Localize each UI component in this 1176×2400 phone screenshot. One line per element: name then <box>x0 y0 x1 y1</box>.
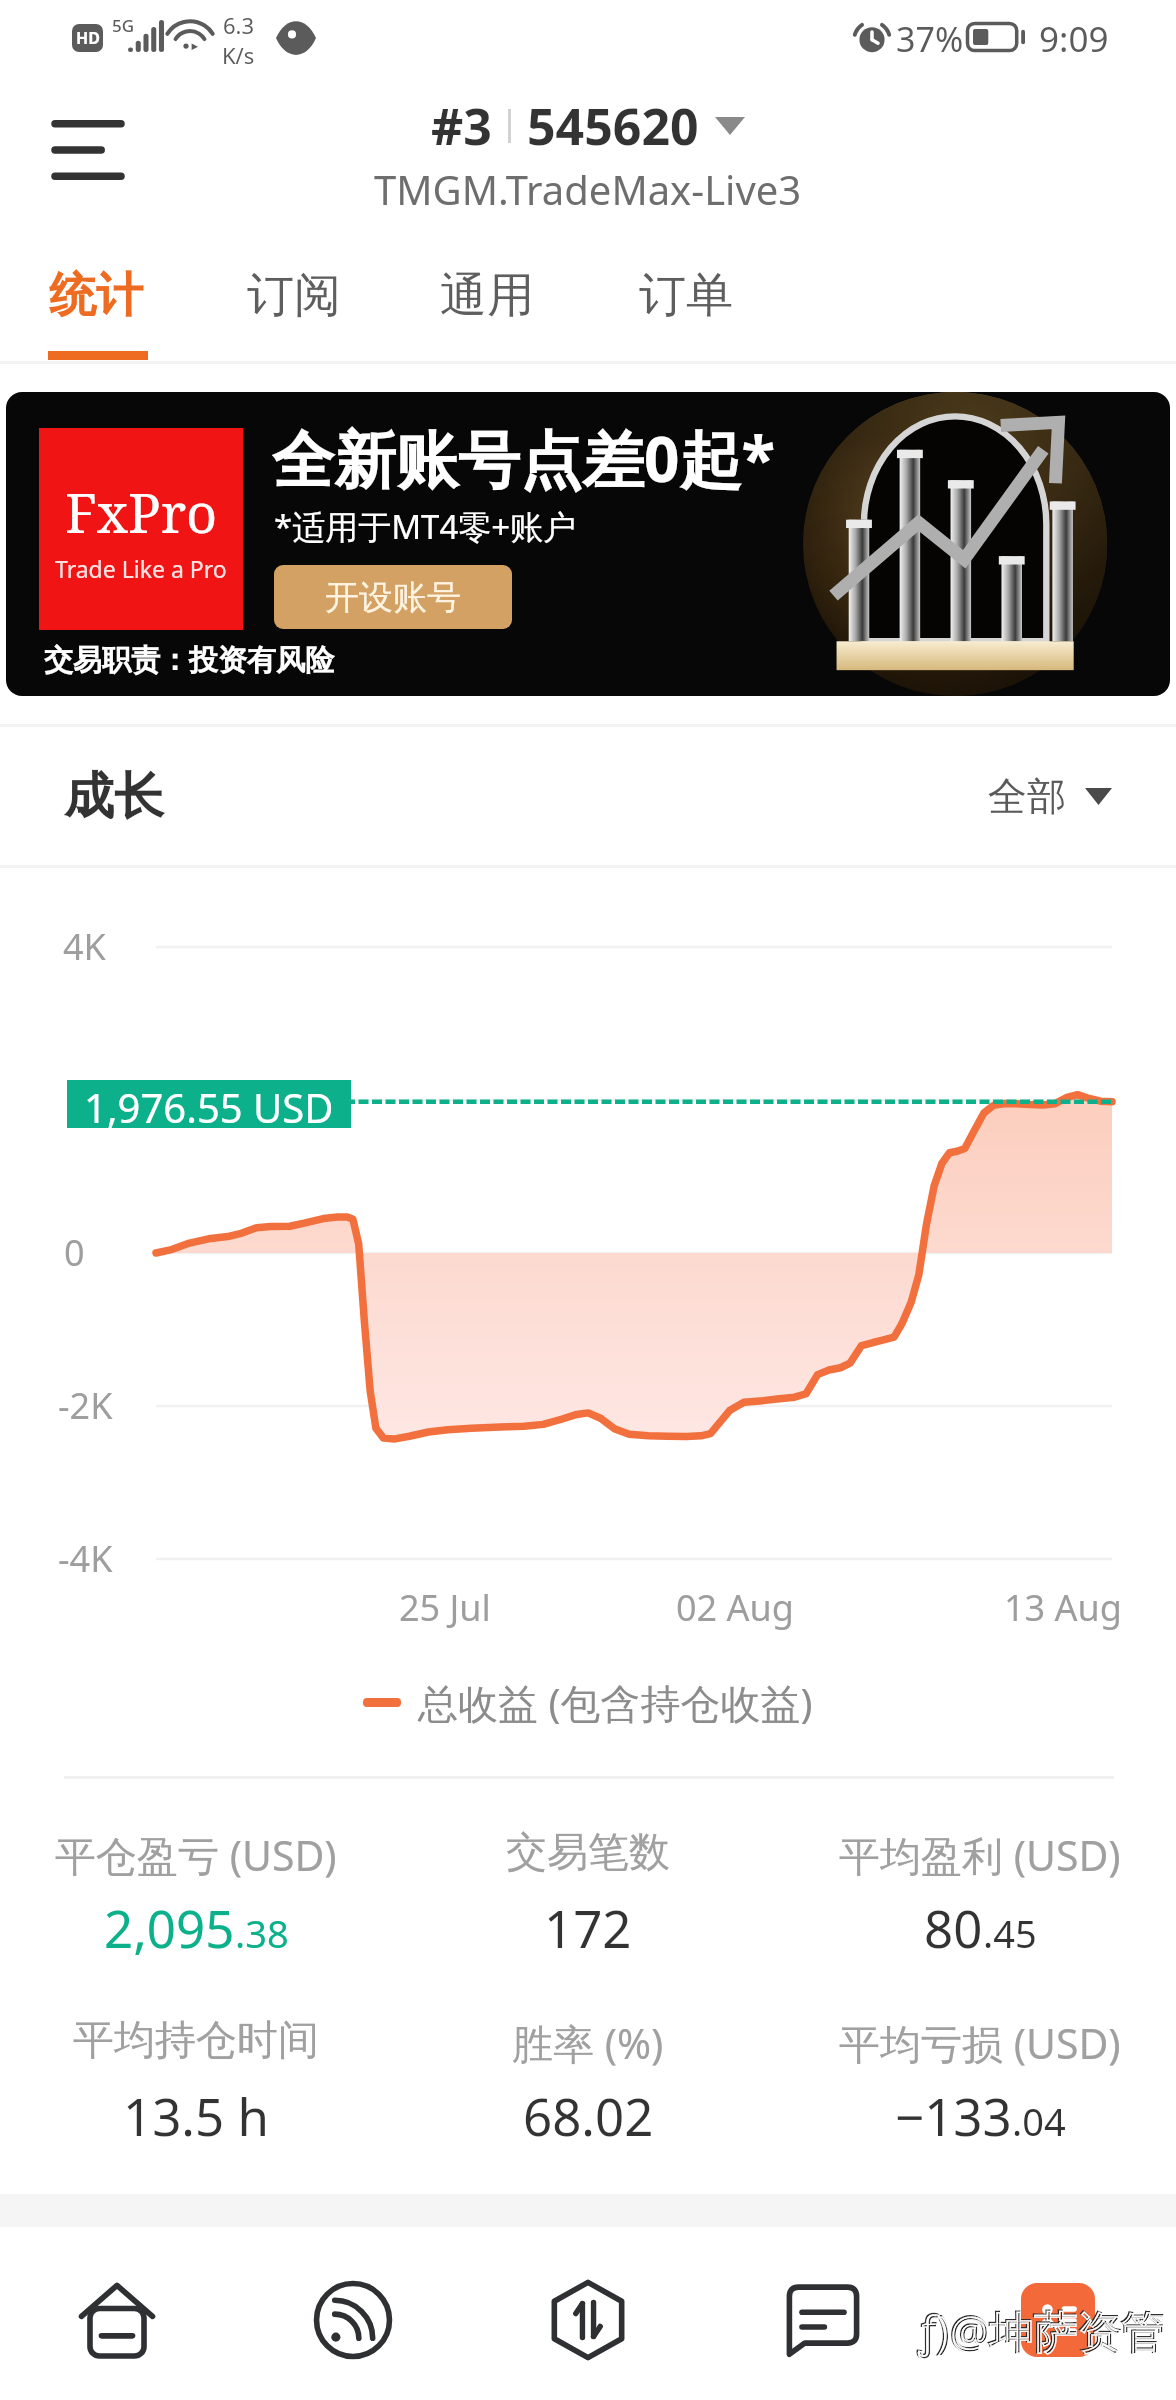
staticText: 开设账号 <box>325 576 461 619</box>
staticText: 4K <box>63 922 106 971</box>
button[interactable]: 开设账号 <box>274 565 512 629</box>
staticText: 通用 <box>440 266 534 325</box>
button[interactable]: Signals <box>253 2257 453 2383</box>
staticText: 13.5 h <box>123 2081 269 2150</box>
button[interactable]: Trade <box>488 2257 688 2383</box>
staticText: .04 <box>1012 2095 1066 2147</box>
staticText: 37% <box>896 16 964 62</box>
button[interactable]: #3 <box>374 92 802 216</box>
staticText: Trade Like a Pro <box>55 553 227 584</box>
staticText: 成长 <box>64 765 164 828</box>
button[interactable]: 统计 <box>0 233 194 381</box>
staticText: −133 <box>895 2081 1012 2150</box>
button[interactable]: 通用 <box>389 233 585 381</box>
button[interactable]: 全部 <box>988 772 1112 821</box>
staticText: 总收益 (包含持仓收益) <box>418 1675 813 1730</box>
staticText: 交易笔数 <box>506 1827 670 1879</box>
staticText: 02 Aug <box>676 1583 794 1632</box>
staticText: 2,095 <box>104 1893 235 1962</box>
staticText: K/s <box>222 40 255 70</box>
staticText: 0 <box>64 1228 85 1277</box>
staticText: 胜率 (%) <box>512 2015 664 2071</box>
staticText: -2K <box>58 1381 113 1430</box>
staticText: ƒ)@坤萨资管 <box>919 2301 1166 2361</box>
staticText: .45 <box>983 1907 1037 1959</box>
staticText: 172 <box>544 1893 632 1962</box>
staticText: 9:09 <box>1039 15 1109 63</box>
staticText: 全新账号点差0起* <box>272 416 776 501</box>
staticText: 25 Jul <box>399 1583 491 1632</box>
staticText: 订单 <box>639 266 733 325</box>
button[interactable]: Messages <box>723 2257 923 2383</box>
staticText: *适用于MT4零+账户 <box>274 504 577 549</box>
staticText: .38 <box>235 1907 289 1959</box>
staticText: 545620 <box>527 92 699 160</box>
button[interactable]: Home <box>17 2257 217 2383</box>
button[interactable]: 订单 <box>588 233 784 381</box>
staticText: 6.3 <box>223 10 255 40</box>
staticText: 平仓盈亏 (USD) <box>55 1827 337 1883</box>
staticText: 平均盈利 (USD) <box>839 1827 1121 1883</box>
staticText: 13 Aug <box>1004 1583 1122 1632</box>
button[interactable]: 订阅 <box>196 233 392 381</box>
staticText: 平均亏损 (USD) <box>839 2015 1121 2071</box>
staticText: 订阅 <box>247 266 341 325</box>
staticText: 全部 <box>988 772 1066 821</box>
staticText: 交易职责：投资有风险 <box>44 642 334 679</box>
staticText: FxPro <box>65 475 218 549</box>
staticText: ƒ)@坤萨资管 <box>918 2300 1165 2360</box>
staticText: #3 <box>431 92 492 160</box>
staticText: TMGM.TradeMax-Live3 <box>374 162 802 216</box>
staticText: HD <box>76 27 100 49</box>
staticText: 68.02 <box>523 2081 654 2150</box>
button[interactable]: Menu <box>8 92 168 208</box>
staticText: 平均持仓时间 <box>73 2015 319 2067</box>
staticText: 统计 <box>49 266 143 325</box>
button[interactable]: Profile <box>958 2257 1158 2383</box>
staticText: 1,976.55 USD <box>84 1080 334 1128</box>
staticText: 80 <box>924 1893 983 1962</box>
staticText: 5G <box>112 14 135 37</box>
staticText: -4K <box>58 1534 113 1583</box>
button[interactable]: FxPro <box>6 392 1170 696</box>
